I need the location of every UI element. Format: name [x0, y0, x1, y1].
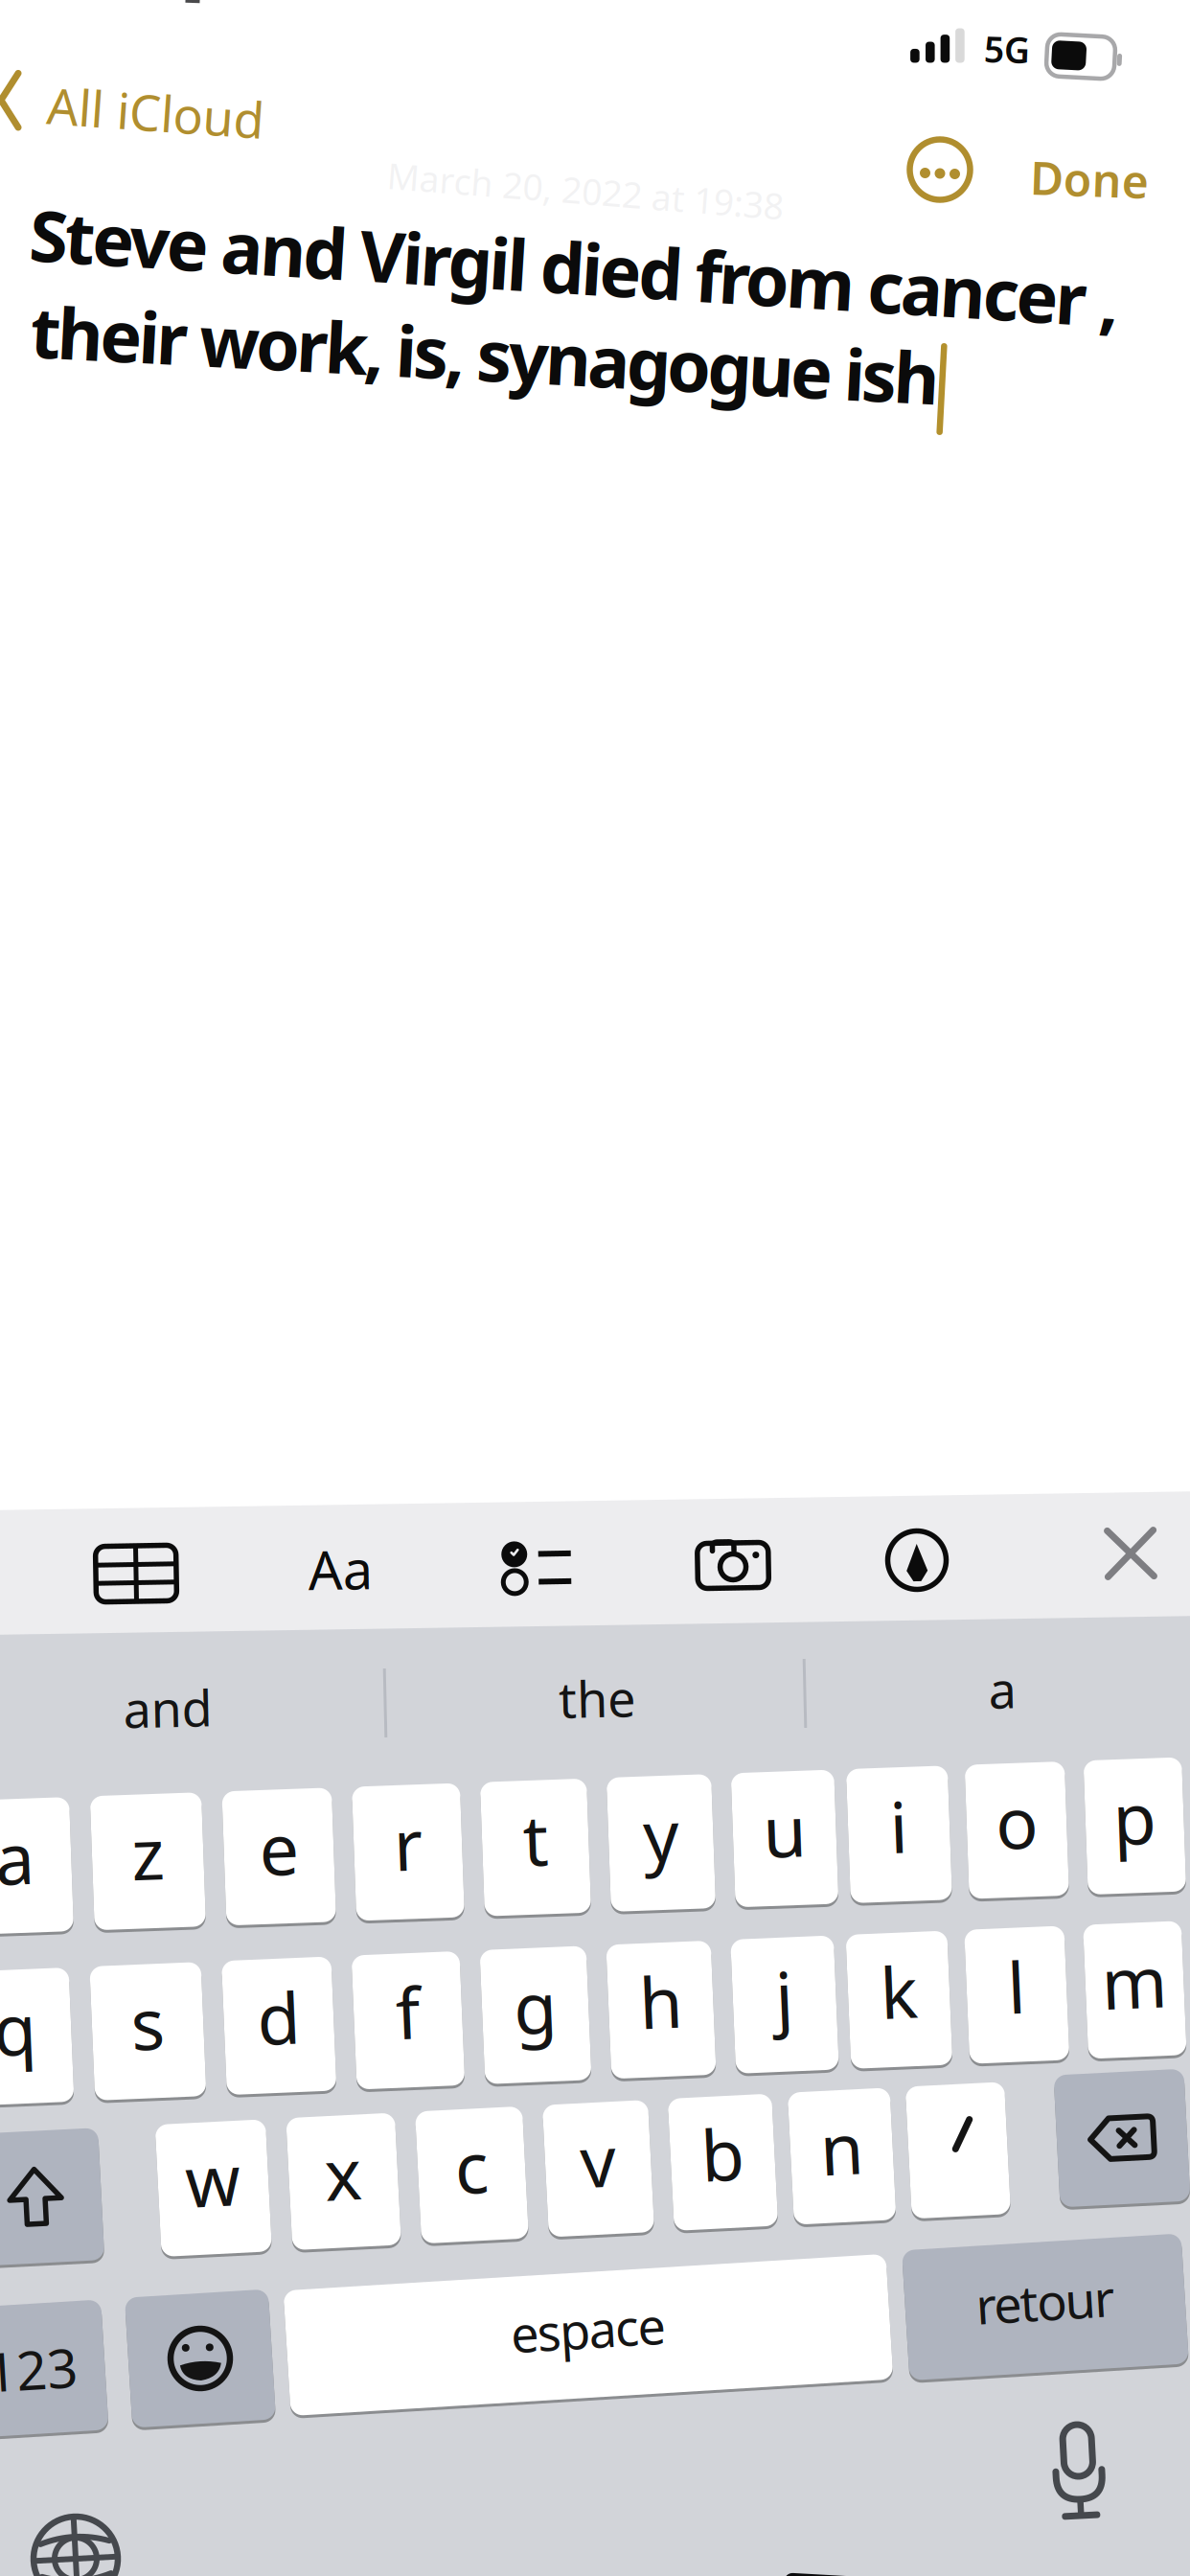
button[interactable] [869, 1517, 965, 1603]
button[interactable] [1087, 1510, 1174, 1597]
staticText: espace [511, 2296, 666, 2362]
button[interactable]: m [1086, 1920, 1184, 2060]
button[interactable]: l [967, 1925, 1067, 2065]
button[interactable]: v [546, 2100, 651, 2238]
staticText: Aa [308, 1533, 372, 1604]
staticText: e [259, 1801, 299, 1895]
button[interactable] [1041, 2420, 1117, 2525]
staticText: retour [976, 2268, 1115, 2334]
button[interactable] [23, 2506, 128, 2576]
staticText: u [763, 1783, 806, 1877]
button[interactable]: a [0, 1796, 71, 1936]
staticText: w [186, 2133, 241, 2226]
staticText: m [1102, 1935, 1168, 2028]
staticText: n [820, 2101, 863, 2194]
staticText: and [123, 1674, 212, 1740]
button[interactable]: o [967, 1760, 1067, 1900]
staticText: q [0, 1982, 37, 2075]
button[interactable]: and [3, 1661, 382, 1753]
button[interactable]: All iCloud [0, 48, 307, 151]
button[interactable]: x [289, 2112, 398, 2250]
staticText: g [514, 1960, 557, 2053]
button[interactable]: espace [286, 2269, 890, 2401]
button[interactable]: k [848, 1930, 950, 2070]
staticText: b [701, 2107, 744, 2200]
button[interactable] [489, 1525, 584, 1611]
staticText: k [880, 1944, 918, 2038]
staticText: h [640, 1954, 683, 2048]
staticText: Steve and Virgil died from cancer , [29, 225, 1120, 318]
staticText: t [523, 1792, 548, 1885]
button[interactable] [904, 134, 975, 205]
button[interactable]: q [0, 1967, 71, 2107]
button[interactable]: n [791, 2087, 893, 2225]
staticText: i [890, 1779, 908, 1872]
staticText: f [396, 1965, 420, 2058]
button[interactable]: h [609, 1940, 714, 2080]
button[interactable]: j [733, 1935, 836, 2075]
button[interactable]: c [418, 2106, 526, 2244]
button[interactable]: t [482, 1777, 589, 1917]
staticText: v [581, 2113, 616, 2207]
button[interactable]: w [158, 2119, 269, 2257]
staticText: x [325, 2126, 362, 2219]
button[interactable]: f [354, 1950, 462, 2090]
button[interactable]: r [354, 1782, 462, 1922]
button[interactable]: y [609, 1773, 714, 1913]
staticText: a [988, 1656, 1016, 1722]
button[interactable]: 123 [0, 2301, 105, 2437]
button[interactable] [88, 1530, 184, 1617]
button[interactable] [909, 2081, 1008, 2219]
staticText: 123 [0, 2333, 78, 2405]
button[interactable]: z [92, 1791, 204, 1931]
staticText: d [257, 1970, 301, 2064]
button[interactable]: s [92, 1961, 204, 2101]
button[interactable]: d [224, 1956, 334, 2096]
staticText: All iCloud [47, 79, 264, 145]
staticText: j [776, 1949, 794, 2043]
button[interactable] [1057, 2069, 1187, 2207]
button[interactable]: Done [1013, 140, 1166, 217]
button[interactable]: b [671, 2093, 775, 2231]
staticText: a [0, 1811, 35, 1904]
button[interactable]: e [224, 1787, 334, 1927]
staticText: r [394, 1797, 423, 1890]
button[interactable]: Aa [292, 1526, 388, 1612]
button[interactable]: g [482, 1945, 589, 2085]
button[interactable] [0, 2128, 101, 2266]
button[interactable]: retour [905, 2239, 1185, 2375]
staticText: o [996, 1775, 1038, 1868]
staticText: s [131, 1976, 165, 2069]
staticText: March 20, 2022 at 19:38 [386, 174, 784, 221]
button[interactable] [685, 1520, 781, 1606]
button[interactable] [128, 2290, 272, 2426]
button[interactable]: u [733, 1769, 836, 1908]
button[interactable]: i [848, 1764, 950, 1904]
staticText: l [1008, 1940, 1026, 2033]
staticText: the [559, 1665, 635, 1731]
staticText: p [1113, 1771, 1156, 1864]
staticText: 5G [984, 25, 1030, 73]
staticText: y [643, 1788, 679, 1881]
button[interactable]: a [808, 1643, 1187, 1735]
staticText: c [455, 2120, 489, 2213]
button[interactable]: the [394, 1652, 796, 1744]
staticText: Done [1030, 148, 1149, 209]
staticText: their work, is, synagogue ish [30, 316, 940, 409]
staticText: z [132, 1806, 164, 1899]
button[interactable]: p [1086, 1756, 1184, 1896]
